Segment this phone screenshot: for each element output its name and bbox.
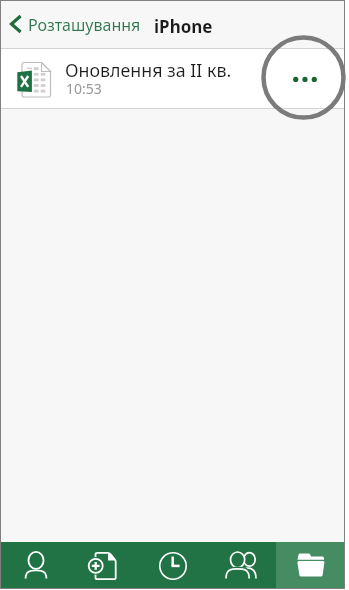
staticText: Оновлення за II кв. xyxy=(65,58,232,82)
button[interactable]: New document xyxy=(69,542,138,589)
staticText: iPhone xyxy=(154,15,213,38)
button[interactable]: More options xyxy=(282,49,328,108)
button[interactable]: Open xyxy=(276,542,345,589)
button[interactable]: Оновлення за II кв. xyxy=(0,49,345,108)
button[interactable]: Recent xyxy=(138,542,207,589)
staticText: 10:53 xyxy=(66,79,102,98)
button[interactable]: Shared xyxy=(207,542,276,589)
button[interactable]: Розташування xyxy=(8,13,141,35)
staticText: Розташування xyxy=(28,14,141,36)
button[interactable]: Me xyxy=(0,542,69,589)
